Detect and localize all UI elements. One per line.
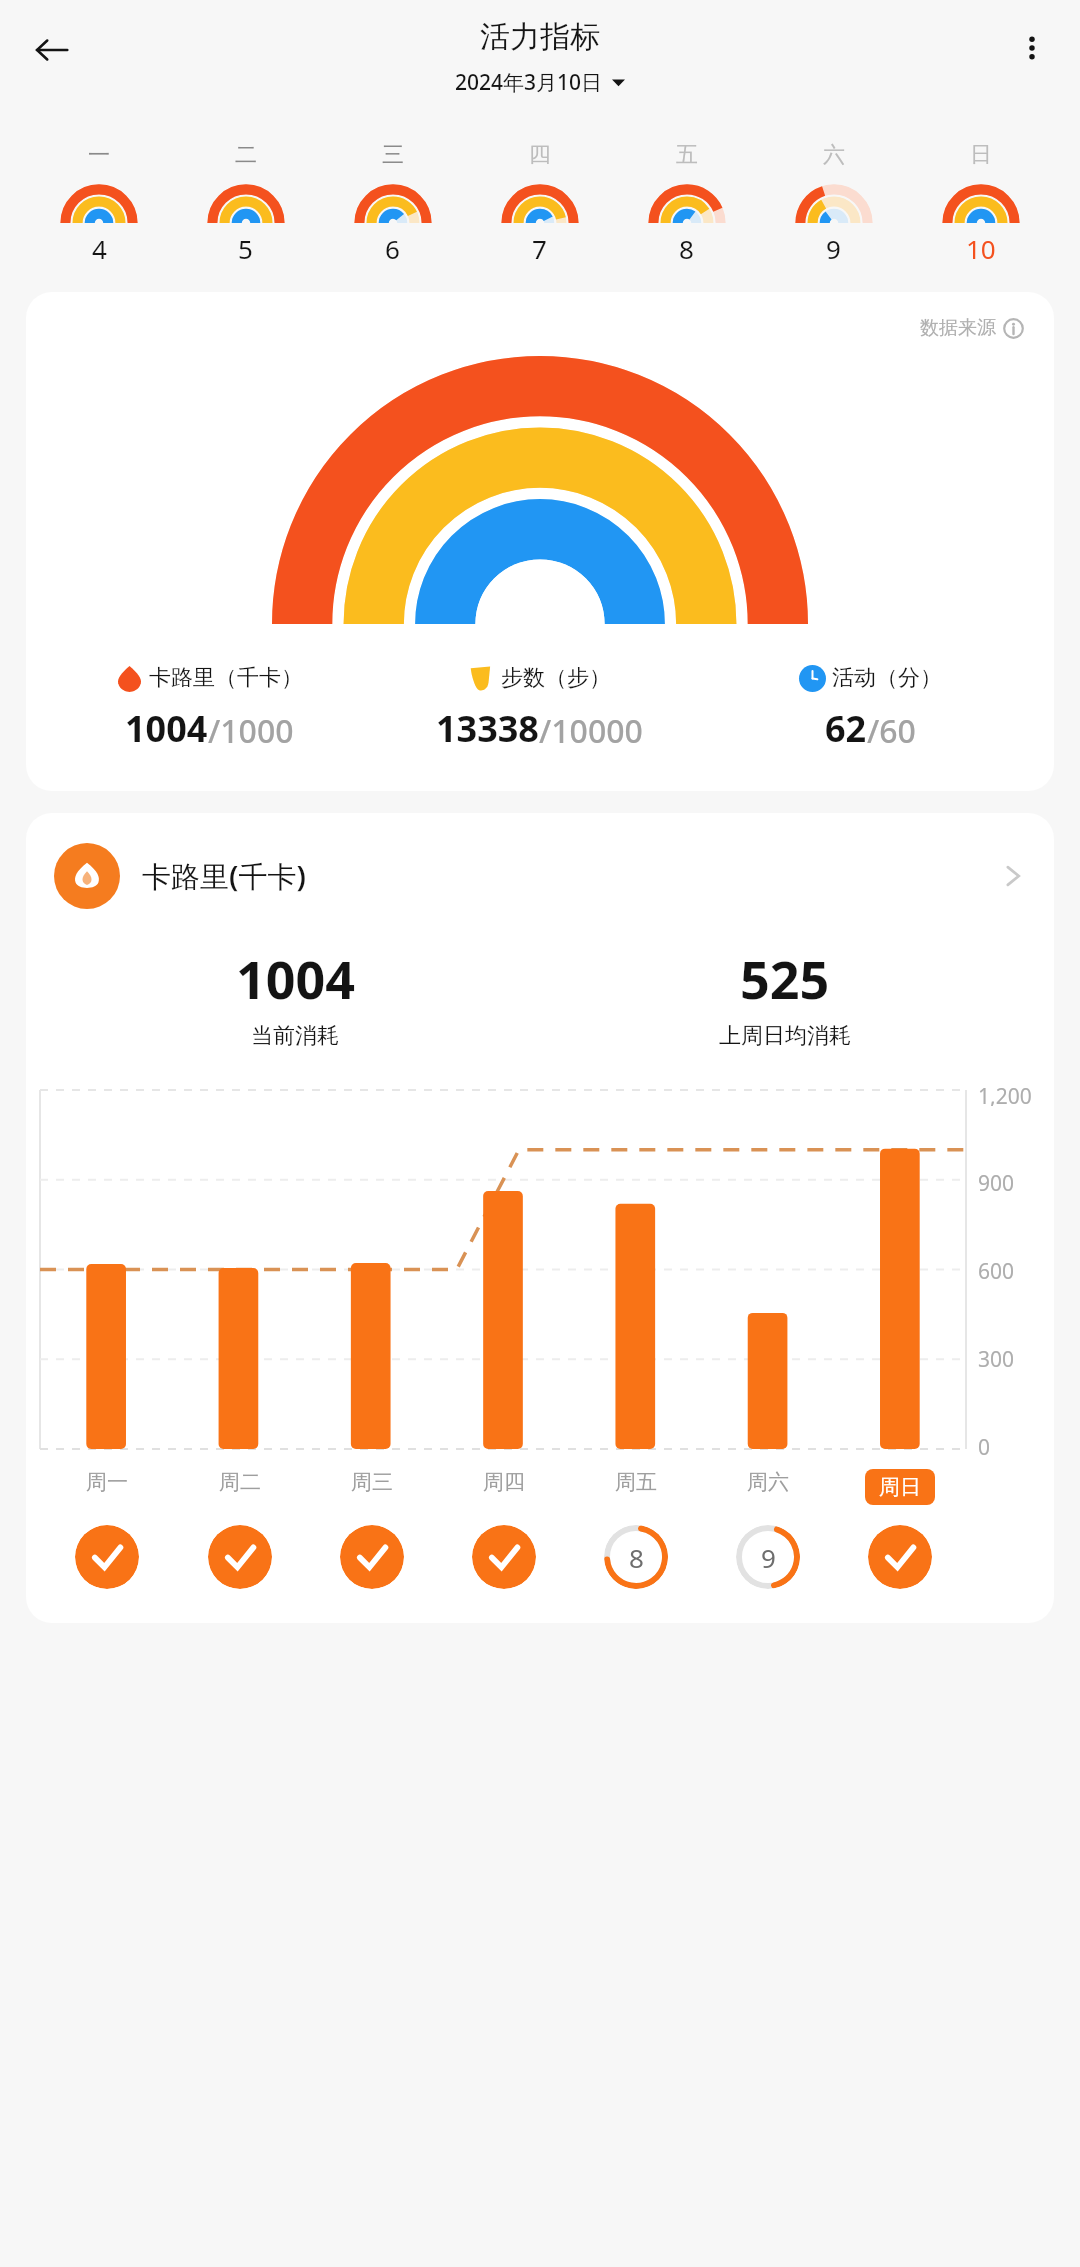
staticText: 1004 xyxy=(236,943,355,1014)
staticText: 9 xyxy=(826,231,841,266)
button[interactable]: 六 xyxy=(760,137,907,270)
button[interactable]: 四 xyxy=(466,137,613,270)
button[interactable]: 数据来源 xyxy=(26,292,1054,791)
staticText: 周六 xyxy=(747,1469,789,1495)
button[interactable]: 日 xyxy=(907,137,1054,270)
staticText: 300 xyxy=(978,1345,1015,1369)
staticText: 900 xyxy=(978,1169,1015,1193)
button[interactable]: Day 8 xyxy=(604,1525,668,1589)
staticText: 六 xyxy=(823,141,845,169)
button[interactable]: 步数（步） xyxy=(374,660,705,757)
staticText: /1000 xyxy=(208,709,294,753)
staticText: 5 xyxy=(238,231,253,266)
staticText: 525 xyxy=(740,943,830,1014)
staticText: 周五 xyxy=(615,1469,657,1495)
staticText: 0 xyxy=(978,1433,991,1457)
staticText: 周一 xyxy=(86,1469,128,1495)
button[interactable]: Goal reached xyxy=(340,1525,404,1589)
staticText: 卡路里(千卡) xyxy=(142,856,306,896)
staticText: 一 xyxy=(88,141,110,169)
button[interactable]: Goal reached xyxy=(75,1525,139,1589)
staticText: 数据来源 xyxy=(920,316,996,340)
staticText: 周日 xyxy=(879,1474,921,1500)
staticText: 9 xyxy=(761,1540,776,1575)
button[interactable]: Goal reached xyxy=(208,1525,272,1589)
staticText: 三 xyxy=(382,141,404,169)
staticText: /60 xyxy=(867,709,916,753)
button[interactable]: 五 xyxy=(613,137,760,270)
button[interactable]: Back xyxy=(22,20,82,80)
staticText: 当前消耗 xyxy=(251,1022,339,1050)
staticText: 1,200 xyxy=(978,1082,1032,1106)
staticText: 活动（分） xyxy=(832,664,942,692)
staticText: 周四 xyxy=(483,1469,525,1495)
staticText: 8 xyxy=(629,1540,644,1575)
button[interactable]: Goal reached xyxy=(868,1525,932,1589)
button[interactable]: 2024年3月10日 xyxy=(449,66,631,99)
staticText: 卡路里（千卡） xyxy=(149,664,303,692)
staticText: 6 xyxy=(385,231,400,266)
staticText: 4 xyxy=(92,231,107,266)
staticText: 8 xyxy=(679,231,694,266)
button[interactable]: 一 xyxy=(26,137,172,270)
staticText: 二 xyxy=(235,141,257,169)
staticText: 13338 xyxy=(436,704,539,753)
button[interactable]: 卡路里（千卡） xyxy=(44,660,374,757)
button[interactable]: 活动（分） xyxy=(705,660,1036,757)
staticText: 10 xyxy=(966,231,996,266)
button[interactable]: Goal reached xyxy=(472,1525,536,1589)
staticText: 2024年3月10日 xyxy=(455,68,603,97)
staticText: 活力指标 xyxy=(480,18,600,56)
button[interactable]: 三 xyxy=(319,137,466,270)
staticText: 600 xyxy=(978,1257,1015,1281)
staticText: 1004 xyxy=(125,704,208,753)
button[interactable]: Day 9 xyxy=(736,1525,800,1589)
button[interactable]: 卡路里(千卡) xyxy=(26,843,1054,909)
staticText: 周二 xyxy=(219,1469,261,1495)
staticText: 四 xyxy=(529,141,551,169)
staticText: 62 xyxy=(825,704,867,753)
staticText: 步数（步） xyxy=(501,664,611,692)
staticText: 上周日均消耗 xyxy=(719,1022,851,1050)
staticText: 7 xyxy=(532,231,547,266)
staticText: 周三 xyxy=(351,1469,393,1495)
button[interactable]: 二 xyxy=(172,137,319,270)
staticText: /10000 xyxy=(539,709,643,753)
button[interactable]: More options xyxy=(1004,20,1060,76)
button[interactable]: 数据来源 xyxy=(916,314,1028,342)
staticText: 日 xyxy=(970,141,992,169)
staticText: 五 xyxy=(676,141,698,169)
